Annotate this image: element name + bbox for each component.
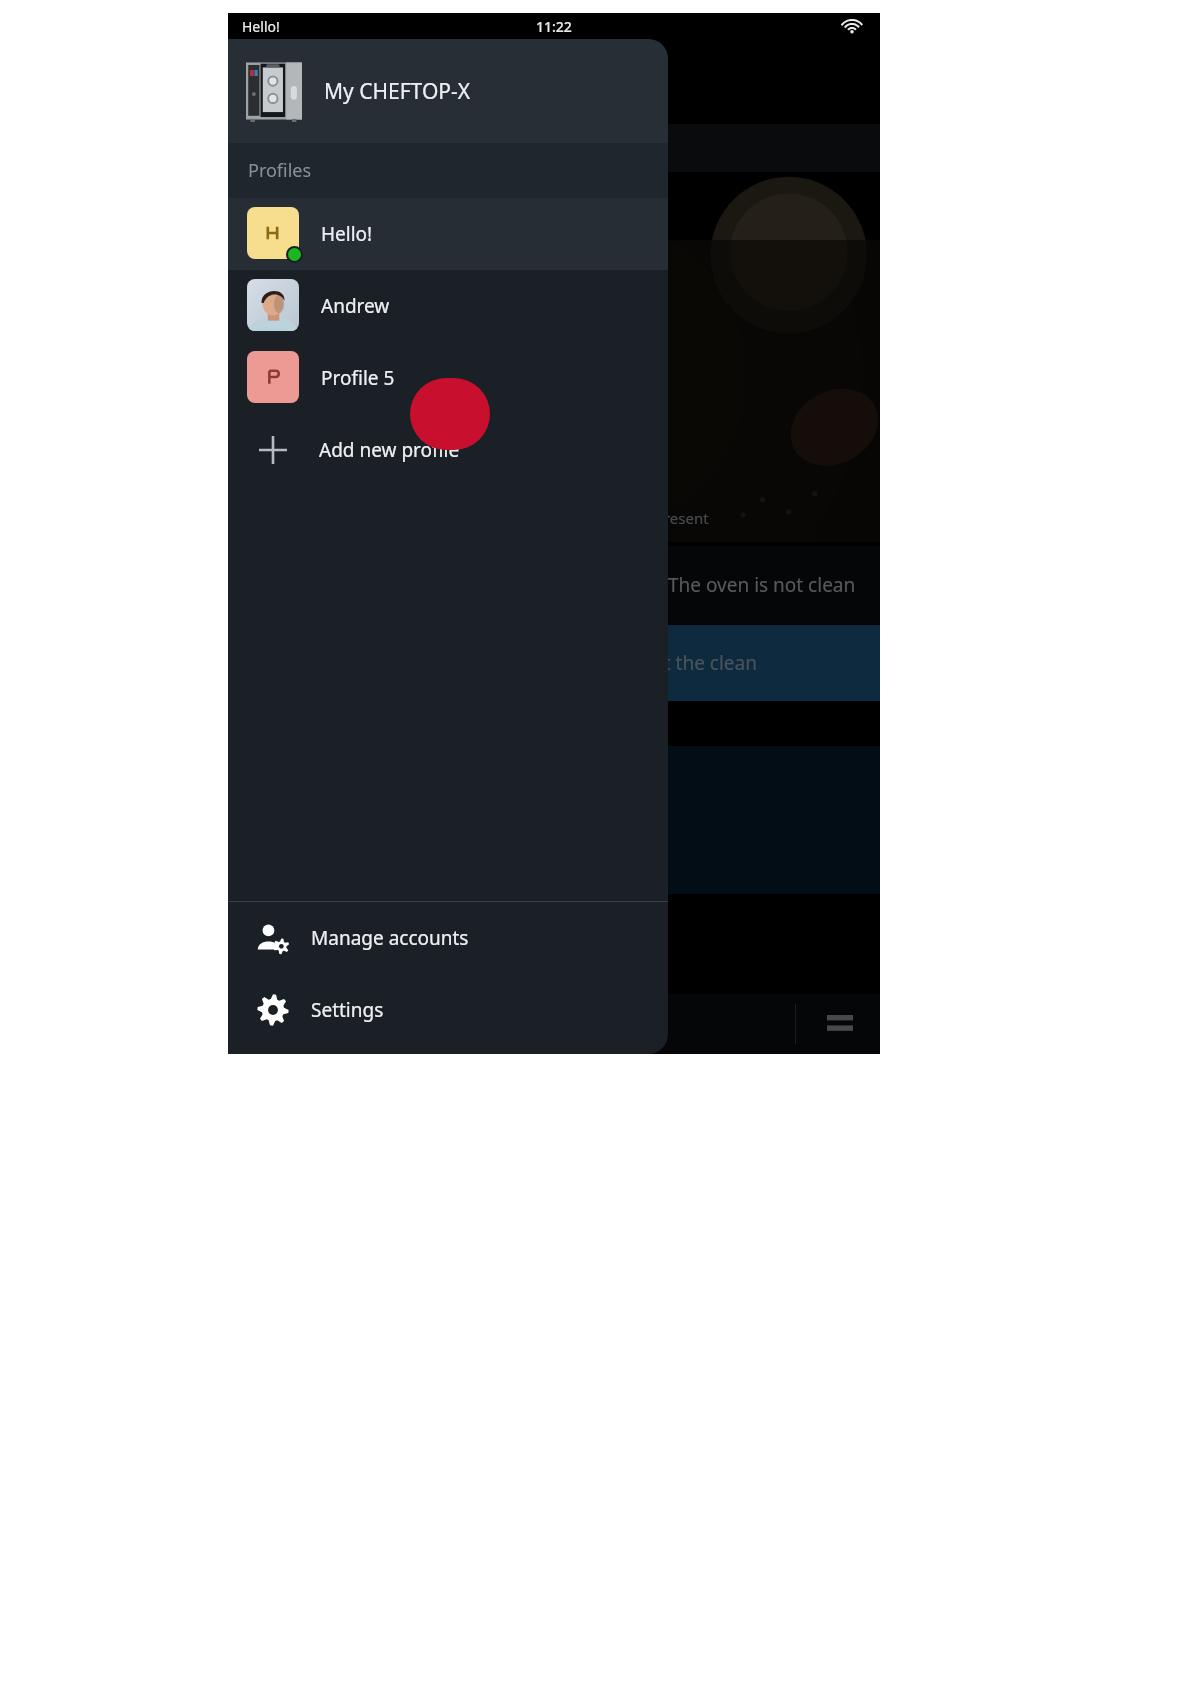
staticText: Profiles xyxy=(248,158,312,183)
button[interactable]: Profile 5 xyxy=(228,342,668,414)
staticText: Hello! xyxy=(321,221,373,247)
staticText: Start the clean xyxy=(628,650,757,676)
button[interactable]: List view xyxy=(818,1002,862,1046)
button[interactable]: Add new profile xyxy=(228,414,668,486)
staticText: Add new profile xyxy=(319,437,460,463)
staticText: Hello! xyxy=(242,17,280,36)
button[interactable]: Settings xyxy=(228,974,668,1046)
staticText: The oven is not clean xyxy=(668,572,856,598)
staticText: Settings xyxy=(311,997,384,1023)
staticText: Lorem ipsum present xyxy=(558,508,709,528)
staticText: Profile 5 xyxy=(321,365,395,391)
button[interactable]: Manage accounts xyxy=(228,902,668,974)
button[interactable] xyxy=(228,746,880,894)
staticText: Manage accounts xyxy=(311,925,469,951)
button[interactable]: My CHEFTOP-X xyxy=(228,39,668,143)
staticText: 11:22 xyxy=(536,17,572,36)
staticText: Andrew xyxy=(321,293,390,319)
staticText: My CHEFTOP-X xyxy=(324,77,471,106)
button[interactable]: Start the clean xyxy=(228,625,880,701)
button[interactable]: Hello! xyxy=(228,198,668,270)
button[interactable]: Andrew xyxy=(228,270,668,342)
button[interactable]: Add profile xyxy=(410,378,490,450)
